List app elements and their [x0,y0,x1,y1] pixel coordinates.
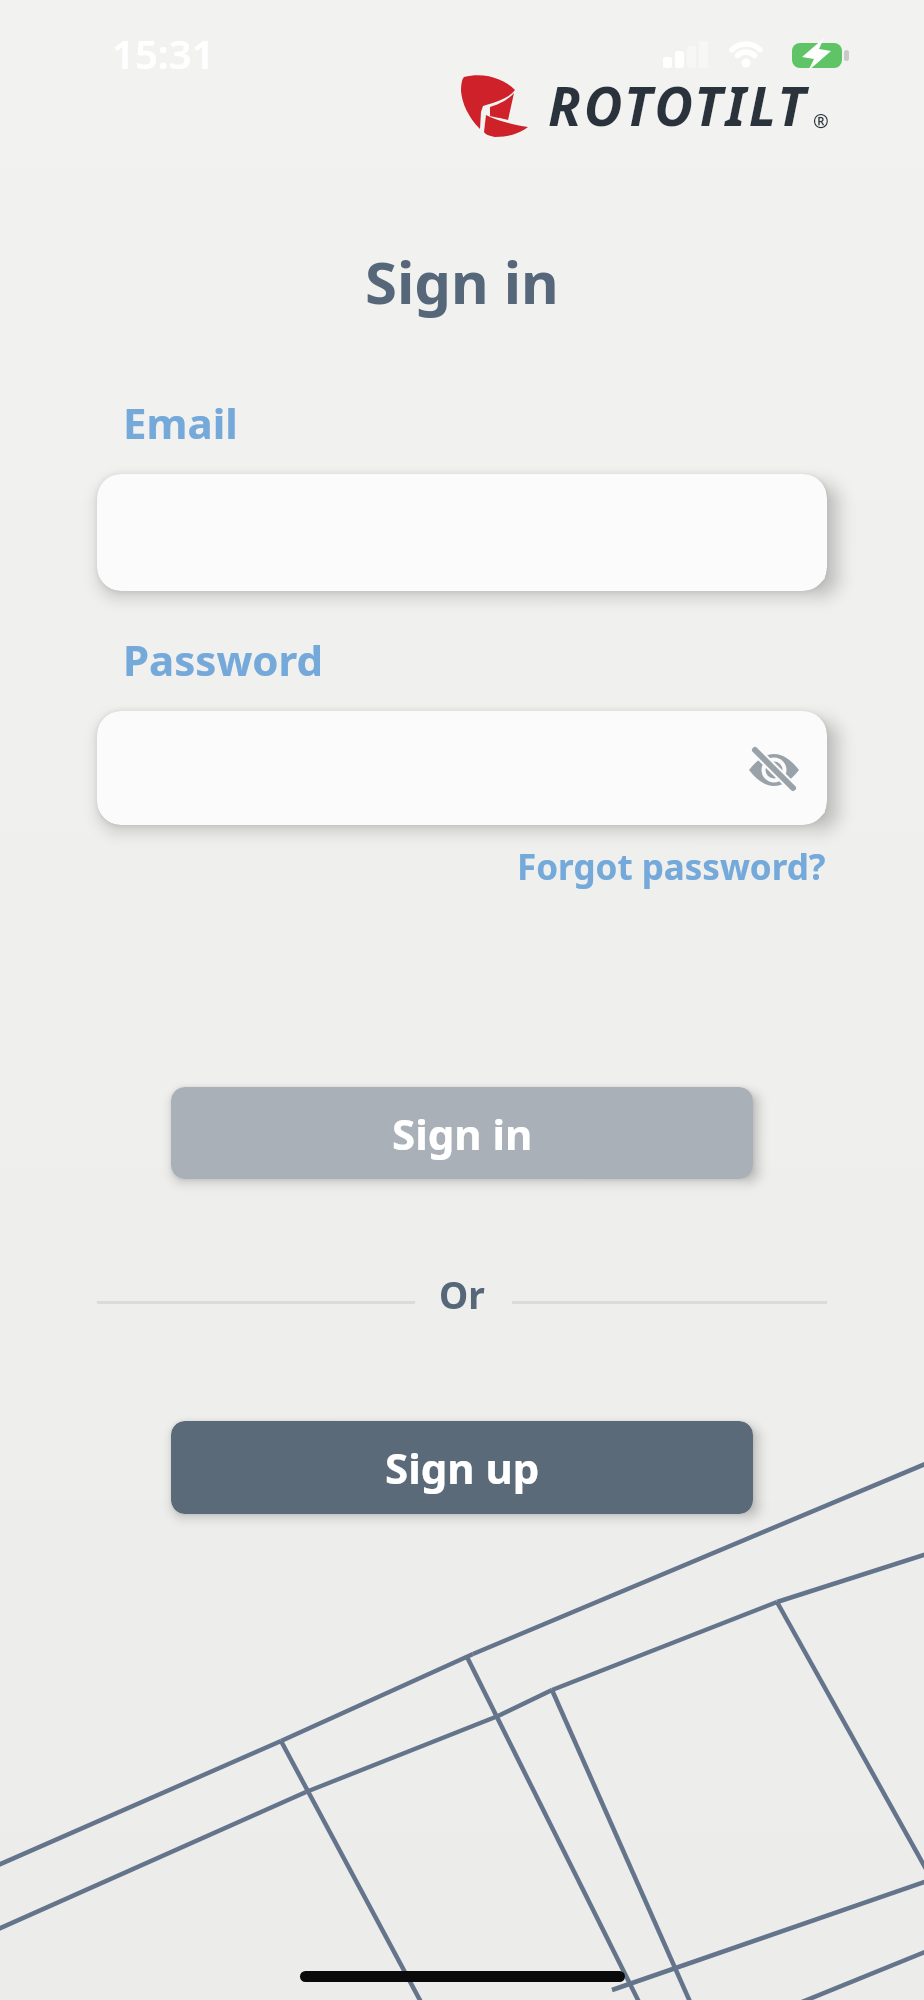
button[interactable]: Sign up [171,1421,753,1514]
staticText: Sign in [392,1105,533,1162]
staticText: ® [813,108,829,134]
staticText: Sign in [365,242,559,321]
staticText: Or [439,1269,485,1319]
button[interactable]: Forgot password? [517,843,826,891]
staticText: ROTOTILT [548,69,809,141]
staticText: Password [123,631,324,688]
button[interactable] [97,711,827,825]
staticText: Email [123,394,238,451]
button[interactable]: Sign in [171,1087,753,1179]
staticText: Sign up [385,1439,540,1496]
staticText: 15:31 [112,26,215,80]
staticText: Forgot password? [517,843,826,891]
